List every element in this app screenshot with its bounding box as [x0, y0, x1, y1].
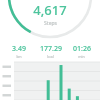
button[interactable]: Activity chart	[0, 60, 100, 100]
staticText: 3.49	[12, 44, 26, 54]
button[interactable]: 177.29	[35, 44, 66, 58]
button[interactable]: 01:26	[66, 44, 97, 58]
staticText: km	[16, 54, 22, 58]
button[interactable]: 4,617	[0, 0, 100, 44]
staticText: 01:26	[73, 44, 91, 54]
staticText: kcal	[47, 54, 54, 58]
staticText: Steps	[44, 20, 57, 27]
staticText: 4,617	[33, 1, 67, 19]
staticText: min	[78, 54, 85, 58]
staticText: 177.29	[40, 44, 62, 54]
button[interactable]: 3.49	[3, 44, 34, 58]
